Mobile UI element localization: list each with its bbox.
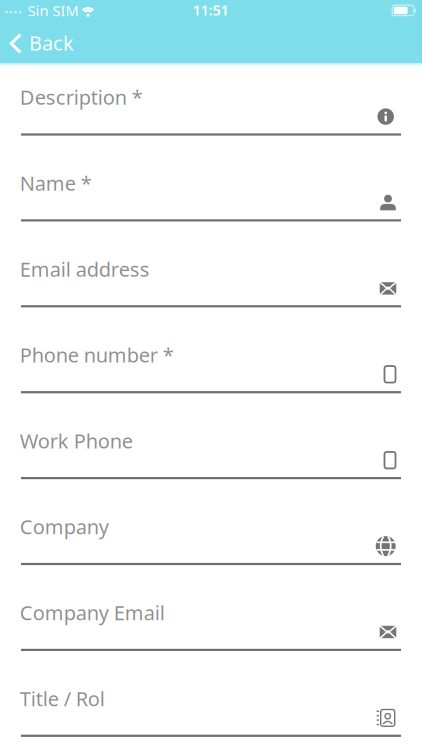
button[interactable]: Description * [0, 50, 422, 136]
button[interactable]: Back [0, 21, 90, 64]
staticText: Phone number * [20, 341, 174, 368]
button[interactable]: Phone number * [0, 307, 422, 393]
staticText: Title / Rol [20, 685, 105, 712]
staticText: 11:51 [192, 0, 228, 20]
button[interactable]: Title / Rol [0, 651, 422, 737]
staticText: Name * [20, 170, 92, 196]
button[interactable]: Company [0, 479, 422, 565]
button[interactable]: Work Phone [0, 393, 422, 479]
button[interactable]: Company Email [0, 565, 422, 651]
staticText: Work Phone [20, 427, 133, 454]
staticText: Email address [20, 256, 150, 282]
staticText: Sin SIM [27, 1, 78, 20]
staticText: Company [20, 513, 109, 540]
button[interactable]: Email address [0, 221, 422, 307]
staticText: Company Email [20, 599, 165, 626]
staticText: Back [29, 29, 74, 56]
staticText: Description * [20, 84, 143, 110]
button[interactable]: Name * [0, 135, 422, 221]
